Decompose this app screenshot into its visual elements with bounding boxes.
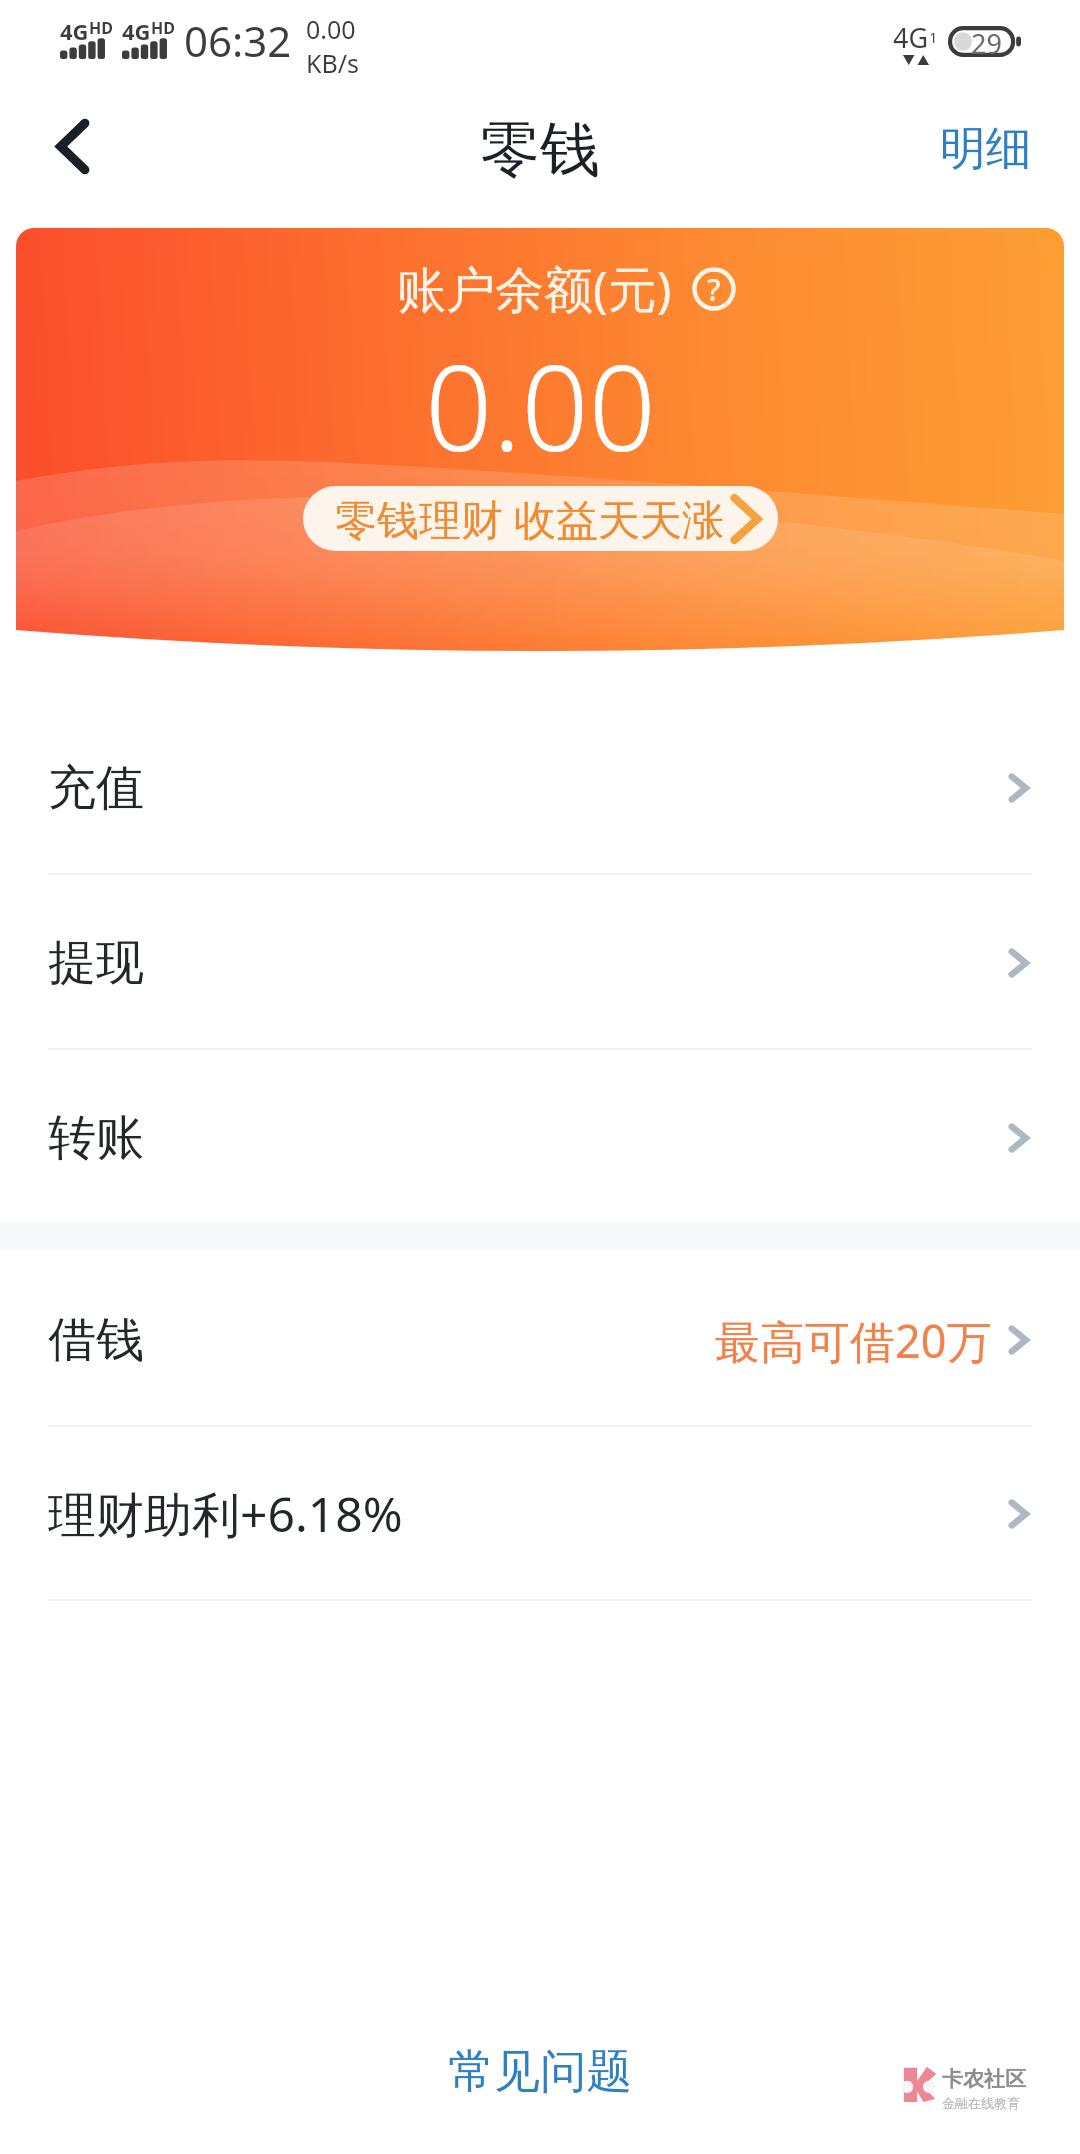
staticText: 06:32	[184, 12, 292, 69]
staticText: 提现	[48, 933, 144, 993]
button[interactable]: 理财助利+6.18%	[0, 1429, 1080, 1599]
button[interactable]: 常见问题	[418, 2031, 662, 2113]
staticText: 金融在线教育	[942, 2095, 1020, 2111]
button[interactable]: 零钱理财 收益天天涨	[303, 486, 778, 551]
staticText: 账户余额(元)	[397, 255, 672, 322]
staticText: HD	[151, 17, 175, 39]
button[interactable]: Back	[0, 100, 142, 218]
staticText: KB/s	[306, 46, 360, 80]
staticText: 借钱	[48, 1310, 144, 1370]
staticText: 29	[971, 25, 1002, 56]
staticText: 零钱	[480, 112, 600, 188]
button[interactable]: 充值	[0, 703, 1080, 873]
staticText: 1	[929, 27, 938, 47]
button[interactable]: 明细	[898, 90, 1080, 208]
staticText: 4G	[122, 16, 151, 46]
staticText: 明细	[940, 120, 1032, 178]
button[interactable]: 转账	[0, 1053, 1080, 1223]
staticText: 4G	[60, 16, 89, 46]
staticText: ?	[707, 269, 721, 310]
staticText: 常见问题	[448, 2043, 632, 2101]
button[interactable]: 提现	[0, 878, 1080, 1048]
staticText: 零钱理财 收益天天涨	[335, 490, 724, 547]
staticText: 0.00	[306, 12, 356, 46]
staticText: 转账	[48, 1108, 144, 1168]
staticText: 0.00	[425, 325, 656, 486]
staticText: 最高可借20万	[715, 1310, 992, 1371]
staticText: 卡农社区	[942, 2066, 1026, 2092]
staticText: 4G	[893, 19, 929, 56]
button[interactable]: Help	[692, 267, 736, 311]
button[interactable]: 借钱	[0, 1255, 1080, 1425]
staticText: 理财助利+6.18%	[48, 1481, 403, 1547]
staticText: HD	[89, 17, 113, 39]
staticText: 充值	[48, 758, 144, 818]
